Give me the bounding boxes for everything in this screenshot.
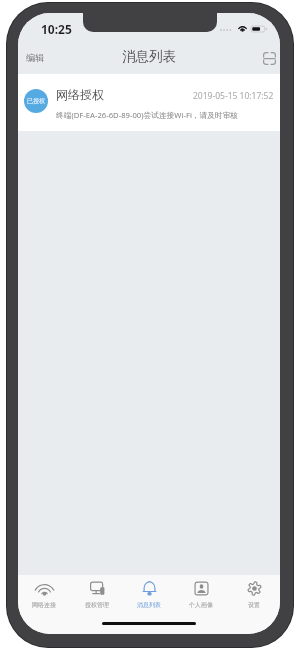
staticText: 2019-05-15 10:17:52 bbox=[193, 90, 274, 102]
staticText: 设置 bbox=[248, 601, 260, 609]
staticText: 网络授权 bbox=[56, 87, 104, 102]
button[interactable]: 个人画像 bbox=[175, 575, 227, 617]
button[interactable]: 编辑 bbox=[18, 46, 56, 69]
staticText: 10:25 bbox=[41, 21, 72, 37]
staticText: 编辑 bbox=[26, 52, 44, 63]
staticText: 消息列表 bbox=[137, 601, 161, 609]
button[interactable]: Scan QR code bbox=[253, 48, 280, 69]
staticText: 个人画像 bbox=[189, 601, 213, 609]
button[interactable]: 设置 bbox=[228, 575, 280, 617]
staticText: 网络连接 bbox=[32, 601, 56, 609]
staticText: 授权管理 bbox=[85, 601, 109, 609]
button[interactable]: 消息列表 bbox=[123, 575, 175, 617]
button[interactable]: 授权管理 bbox=[71, 575, 123, 617]
button[interactable]: 网络连接 bbox=[18, 575, 70, 617]
staticText: 已授权 bbox=[27, 97, 45, 105]
staticText: 消息列表 bbox=[122, 48, 176, 65]
button[interactable]: 已授权 bbox=[18, 74, 280, 131]
staticText: 终端(DF-EA-26-6D-89-00)尝试连接Wi-Fi，请及时审核 bbox=[56, 110, 239, 121]
